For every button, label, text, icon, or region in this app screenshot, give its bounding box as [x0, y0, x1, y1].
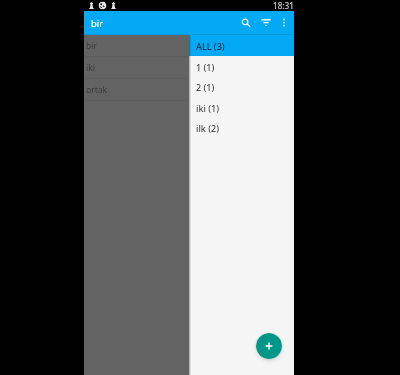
staticText: bir [86, 40, 97, 52]
staticText: 2 (1) [196, 81, 215, 93]
staticText: iki (1) [196, 102, 219, 114]
button[interactable]: ilk (2) [189, 117, 294, 138]
staticText: iki [86, 62, 95, 74]
staticText: 18:31 [273, 0, 294, 11]
staticText: ALL (3) [196, 40, 225, 52]
staticText: ilk (2) [196, 122, 219, 134]
button[interactable]: iki (1) [189, 97, 294, 118]
button[interactable]: 1 (1) [189, 56, 294, 77]
staticText: 1 (1) [196, 61, 215, 73]
button[interactable]: ortak [84, 79, 189, 100]
button[interactable]: Filter [256, 11, 275, 35]
button[interactable]: 2 (1) [189, 76, 294, 97]
staticText: bir [91, 17, 104, 30]
button[interactable]: Add [256, 333, 282, 359]
staticText: ortak [86, 84, 108, 96]
button[interactable]: ALL (3) [189, 35, 294, 56]
button[interactable]: Search [235, 11, 256, 35]
button[interactable]: bir [84, 35, 189, 56]
button[interactable]: More options [275, 11, 292, 35]
